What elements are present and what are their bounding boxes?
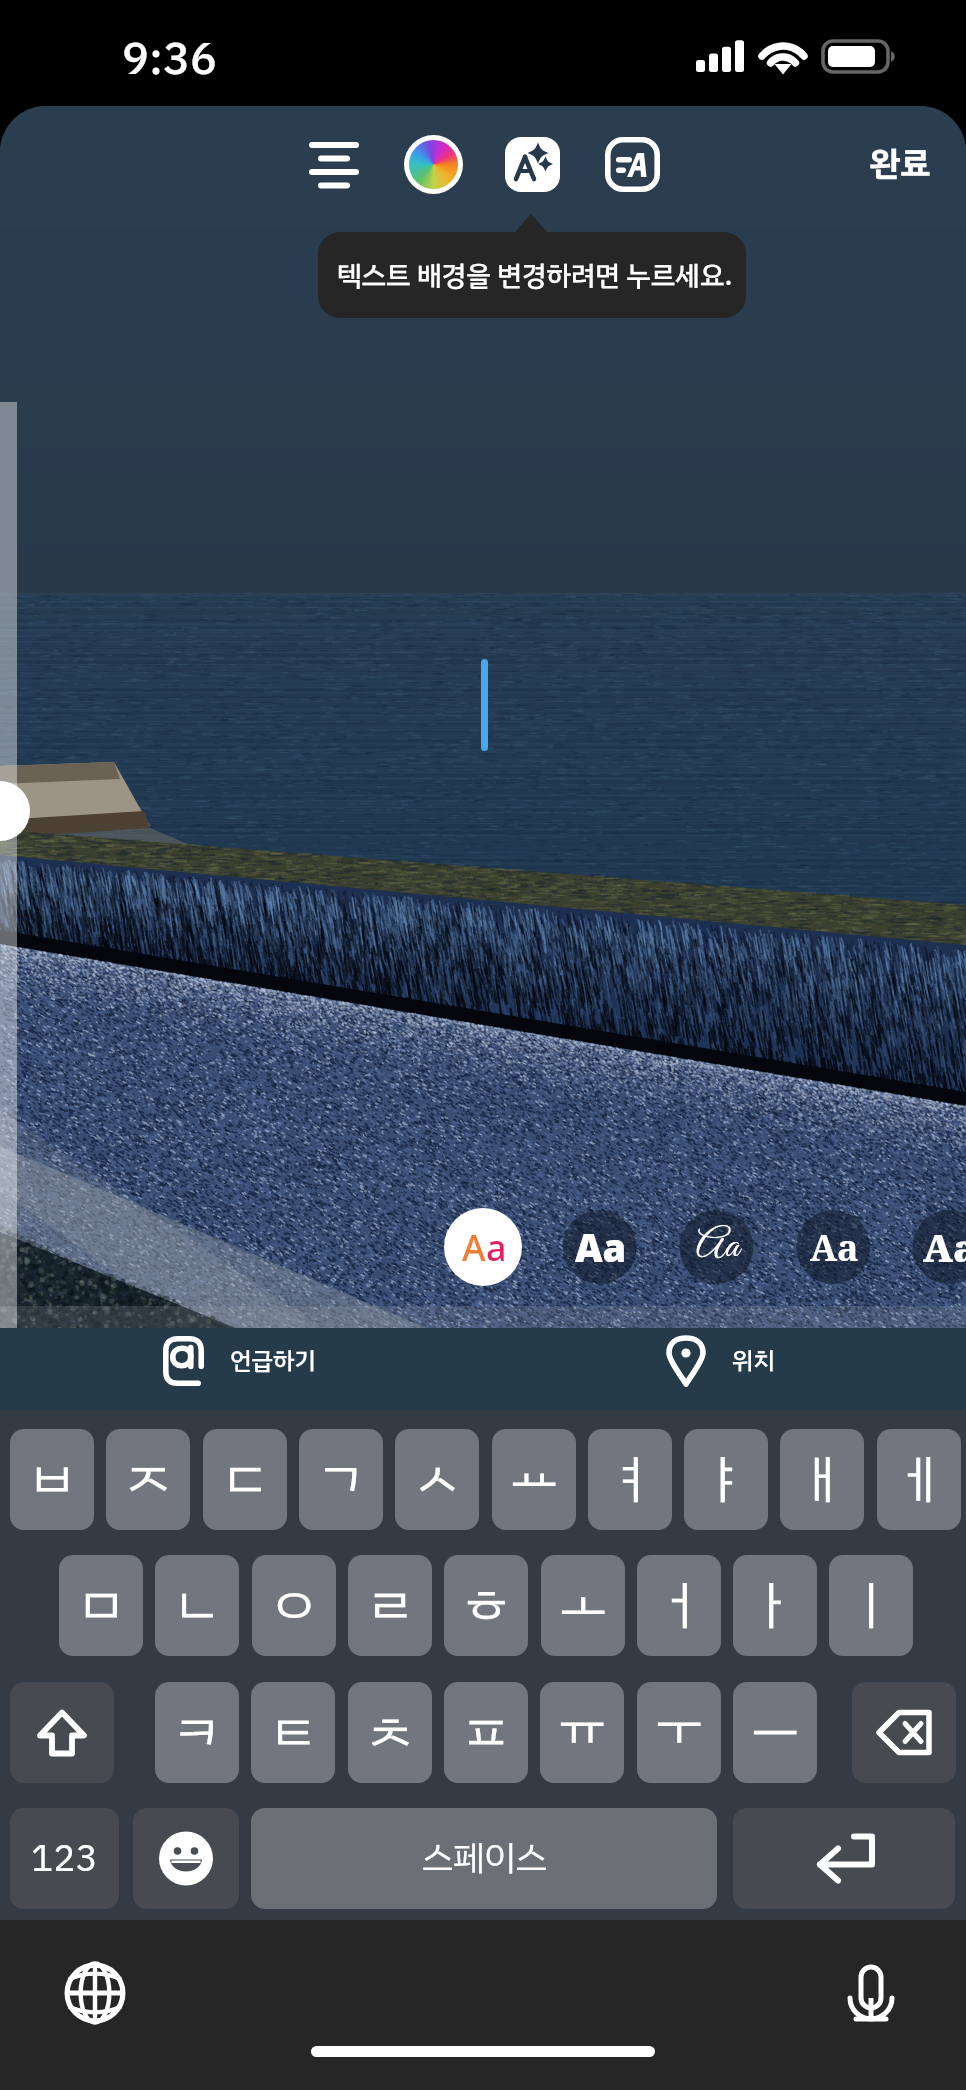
button[interactable]: Aa bbox=[562, 1208, 640, 1286]
button[interactable]: 스페이스 bbox=[251, 1808, 717, 1909]
button[interactable]: 123 bbox=[10, 1808, 119, 1909]
staticText: Aa bbox=[923, 1221, 966, 1273]
button[interactable]: ㅌ bbox=[251, 1682, 335, 1783]
staticText: ㅕ bbox=[607, 1441, 654, 1519]
button[interactable]: ㅜ bbox=[637, 1682, 721, 1783]
staticText: ㅗ bbox=[560, 1567, 607, 1645]
staticText: ㅔ bbox=[896, 1441, 943, 1519]
staticText: Aa bbox=[810, 1223, 859, 1272]
staticText: A bbox=[462, 1223, 486, 1272]
button[interactable]: Text effect bbox=[595, 127, 660, 192]
button[interactable]: ㅔ bbox=[877, 1429, 961, 1530]
staticText: ㄴ bbox=[174, 1567, 221, 1645]
button[interactable]: ㄴ bbox=[155, 1555, 239, 1656]
staticText: Aa bbox=[575, 1221, 627, 1273]
button[interactable]: Emoji bbox=[133, 1808, 239, 1909]
button[interactable]: ㄹ bbox=[348, 1555, 432, 1656]
button[interactable]: ㅅ bbox=[395, 1429, 479, 1530]
button[interactable]: Backspace bbox=[852, 1682, 956, 1783]
staticText: ㅓ bbox=[656, 1567, 703, 1645]
button[interactable]: Colour bbox=[395, 132, 472, 209]
button[interactable]: ㅂ bbox=[10, 1429, 94, 1530]
button[interactable]: Aa bbox=[795, 1208, 873, 1286]
staticText: ㅛ bbox=[511, 1441, 558, 1519]
button[interactable]: Aa bbox=[911, 1208, 966, 1286]
button[interactable]: ㅛ bbox=[492, 1429, 576, 1530]
button[interactable]: ㅓ bbox=[637, 1555, 721, 1656]
button[interactable]: ㅎ bbox=[444, 1555, 528, 1656]
staticText: 언급하기 bbox=[230, 1343, 316, 1379]
staticText: Aa bbox=[696, 1222, 739, 1272]
staticText: ㅅ bbox=[414, 1441, 461, 1519]
staticText: ㅈ bbox=[125, 1441, 172, 1519]
staticText: ㅜ bbox=[656, 1694, 703, 1772]
button[interactable]: ㅕ bbox=[588, 1429, 672, 1530]
button[interactable]: Change keyboard bbox=[52, 1950, 138, 2036]
staticText: ㅋ bbox=[174, 1694, 221, 1772]
button[interactable]: 위치 bbox=[666, 1335, 775, 1387]
button[interactable]: ㅋ bbox=[155, 1682, 239, 1783]
staticText: 9:36 bbox=[122, 25, 217, 93]
staticText: ㅁ bbox=[78, 1567, 125, 1645]
button[interactable]: ㅑ bbox=[684, 1429, 768, 1530]
button[interactable]: ㄷ bbox=[203, 1429, 287, 1530]
button[interactable]: 언급하기 bbox=[163, 1336, 316, 1386]
staticText: ㅌ bbox=[270, 1694, 317, 1772]
staticText: ㄹ bbox=[367, 1567, 414, 1645]
button[interactable]: ㅍ bbox=[444, 1682, 528, 1783]
button[interactable]: Text alignment bbox=[295, 124, 373, 202]
staticText: ㅐ bbox=[799, 1441, 846, 1519]
staticText: ㅏ bbox=[752, 1567, 799, 1645]
button[interactable]: Text background bbox=[495, 127, 560, 192]
button[interactable]: ㅁ bbox=[59, 1555, 143, 1656]
button[interactable]: ㅐ bbox=[780, 1429, 864, 1530]
staticText: ㅎ bbox=[463, 1567, 510, 1645]
button[interactable]: ㅏ bbox=[733, 1555, 817, 1656]
button[interactable]: Aa bbox=[678, 1208, 756, 1286]
staticText: ㅡ bbox=[752, 1694, 799, 1772]
staticText: 스페이스 bbox=[422, 1832, 547, 1885]
staticText: ㅊ bbox=[367, 1694, 414, 1772]
button[interactable]: Return bbox=[733, 1808, 955, 1909]
button[interactable]: 완료 bbox=[845, 124, 955, 202]
staticText: ㅇ bbox=[271, 1567, 318, 1645]
button[interactable]: ㅣ bbox=[829, 1555, 913, 1656]
button[interactable]: ㅇ bbox=[252, 1555, 336, 1656]
staticText: a bbox=[486, 1223, 507, 1272]
staticText: ㄱ bbox=[318, 1441, 365, 1519]
staticText: 텍스트 배경을 변경하려면 누르세요. bbox=[337, 255, 733, 296]
button[interactable]: ㅡ bbox=[733, 1682, 817, 1783]
staticText: 완료 bbox=[870, 138, 931, 189]
staticText: ㄷ bbox=[222, 1441, 269, 1519]
button[interactable]: Shift bbox=[10, 1682, 114, 1783]
button[interactable]: Dictation bbox=[828, 1950, 914, 2036]
button[interactable]: A bbox=[445, 1208, 523, 1286]
button[interactable]: ㅈ bbox=[106, 1429, 190, 1530]
button[interactable]: ㅠ bbox=[540, 1682, 624, 1783]
button[interactable]: ㅗ bbox=[541, 1555, 625, 1656]
button[interactable]: ㄱ bbox=[299, 1429, 383, 1530]
staticText: 위치 bbox=[732, 1343, 775, 1379]
staticText: ㅍ bbox=[463, 1694, 510, 1772]
staticText: ㅠ bbox=[559, 1694, 606, 1772]
staticText: 123 bbox=[31, 1831, 98, 1887]
staticText: ㅣ bbox=[848, 1567, 895, 1645]
staticText: ㅂ bbox=[29, 1441, 76, 1519]
button[interactable]: ㅊ bbox=[348, 1682, 432, 1783]
staticText: ㅑ bbox=[703, 1441, 750, 1519]
